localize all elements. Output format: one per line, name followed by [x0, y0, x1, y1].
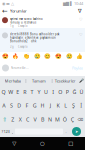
button[interactable]: Back [0, 137, 28, 150]
staticText: 🔥 [12, 53, 19, 59]
button[interactable]: O [57, 85, 64, 98]
staticText: G [33, 102, 37, 109]
button[interactable]: Ş [69, 98, 77, 112]
button[interactable]: derebil8888 Bonu adhoolder pak [0, 28, 85, 52]
staticText: Yorumlar [10, 8, 27, 14]
button[interactable]: B [39, 113, 46, 126]
button[interactable]: Y [35, 85, 42, 98]
button[interactable]: ayrimci mar sosno kadrino [0, 15, 85, 28]
button[interactable]: Sort comments [75, 7, 85, 15]
staticText: Merhaba [5, 78, 21, 84]
staticText: ▽ [12, 140, 16, 147]
staticText: C [26, 116, 29, 123]
staticText: Ğ [72, 88, 76, 96]
button[interactable]: J [46, 98, 54, 112]
staticText: S [10, 102, 13, 109]
staticText: 😊 [44, 53, 51, 59]
staticText: ◉ ▬ △ [2, 1, 14, 6]
staticText: J [50, 102, 51, 109]
button[interactable]: Ö [61, 113, 68, 126]
staticText: 👏 [23, 53, 30, 59]
button[interactable]: Back [0, 7, 10, 15]
staticText: N [48, 116, 52, 123]
button[interactable]: G [31, 98, 39, 112]
staticText: ?123 [1, 129, 9, 134]
staticText: X [19, 116, 22, 123]
staticText: W [8, 88, 13, 96]
button[interactable]: React [21, 52, 32, 60]
button[interactable]: Tamam [26, 76, 52, 85]
button[interactable]: Recents [57, 137, 85, 150]
staticText: Tonusu u redlanus [10, 21, 36, 24]
button[interactable]: H [39, 98, 46, 112]
staticText: ▆▇ ▌ 10:44 [63, 1, 83, 6]
button[interactable]: X [16, 113, 24, 126]
staticText: D [17, 102, 21, 109]
staticText: 😍 [55, 53, 62, 59]
staticText: ⇧ [2, 116, 6, 123]
button[interactable]: . [63, 127, 69, 136]
button[interactable]: Ü [78, 85, 85, 98]
staticText: A [2, 102, 5, 109]
button[interactable]: S [8, 98, 15, 112]
button[interactable]: React [42, 52, 53, 60]
button[interactable]: Ğ [71, 85, 78, 98]
button[interactable]: React [64, 52, 74, 60]
button[interactable]: W [7, 85, 14, 98]
button[interactable]: N [46, 113, 54, 126]
staticText: Z [11, 116, 14, 123]
staticText: L [64, 102, 67, 109]
button[interactable]: Backspace [76, 113, 85, 126]
staticText: ♡ [79, 32, 83, 37]
button[interactable]: Voice input [78, 76, 85, 85]
staticText: 👍 [76, 53, 83, 59]
button[interactable]: İ [77, 98, 85, 112]
button[interactable]: Shift [0, 113, 9, 126]
button[interactable]: React [53, 52, 64, 60]
staticText: ∇ [78, 8, 82, 14]
staticText: Ş [72, 102, 75, 109]
button[interactable]: L [62, 98, 69, 112]
staticText: M [55, 116, 60, 123]
button[interactable]: I [50, 85, 57, 98]
button[interactable]: E [14, 85, 21, 98]
button[interactable]: V [31, 113, 39, 126]
staticText: ayrimci mar sosno kadrino [10, 17, 43, 21]
button[interactable]: K [54, 98, 62, 112]
button[interactable]: React [32, 52, 42, 60]
button[interactable]: , [10, 127, 15, 136]
button[interactable]: React [11, 52, 21, 60]
staticText: U [44, 88, 48, 96]
button[interactable]: Q [0, 85, 7, 98]
button[interactable]: ?123 [1, 127, 10, 136]
staticText: Ö [63, 116, 67, 123]
button[interactable]: Merhaba [0, 76, 25, 85]
button[interactable]: P [64, 85, 71, 98]
staticText: Ü [79, 88, 83, 96]
button[interactable]: T [28, 85, 35, 98]
button[interactable]: D [15, 98, 23, 112]
button[interactable]: React [74, 52, 85, 60]
staticText: Yorum ekle... [11, 66, 29, 70]
button[interactable]: U [42, 85, 50, 98]
button[interactable]: Z [9, 113, 16, 126]
staticText: B [41, 116, 44, 123]
staticText: T [30, 88, 33, 96]
button[interactable]: A [0, 98, 8, 112]
button[interactable]: Tesekkurler [53, 76, 78, 85]
button[interactable]: C [24, 113, 31, 126]
button[interactable]: React [0, 52, 11, 60]
staticText: İ [80, 102, 82, 109]
staticText: Tamam [32, 78, 46, 84]
button[interactable]: M [54, 113, 61, 126]
button[interactable]: R [21, 85, 28, 98]
button[interactable]: Paylas [72, 65, 83, 71]
staticText: 🎤 [79, 79, 84, 83]
staticText: O [58, 88, 62, 96]
button[interactable]: Home [28, 137, 57, 150]
button[interactable]: Ç [69, 113, 76, 126]
button[interactable]: F [23, 98, 31, 112]
staticText: ♡ [79, 17, 83, 22]
button[interactable]: Send [72, 127, 81, 136]
